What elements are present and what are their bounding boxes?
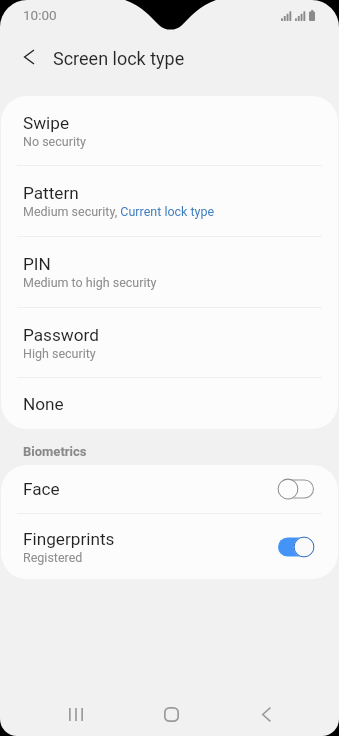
- button[interactable]: Fingerprints: [1, 514, 338, 579]
- staticText: Swipe: [23, 113, 70, 133]
- button[interactable]: None: [1, 378, 338, 429]
- staticText: None: [23, 394, 64, 414]
- button[interactable]: Face: [1, 465, 338, 513]
- staticText: No security: [23, 134, 86, 149]
- other: Fingerprints enabled: [278, 536, 314, 558]
- other: Face disabled: [278, 478, 314, 500]
- staticText: PIN: [23, 254, 51, 274]
- staticText: Pattern: [23, 183, 79, 203]
- button[interactable]: Pattern: [1, 166, 338, 236]
- staticText: Face: [23, 479, 60, 499]
- button[interactable]: PIN: [1, 237, 338, 307]
- staticText: Medium to high security: [23, 275, 157, 290]
- button[interactable]: Back: [238, 690, 294, 736]
- staticText: Registered: [23, 550, 83, 565]
- staticText: Medium security, Current lock type: [23, 204, 215, 219]
- staticText: Biometrics: [23, 444, 87, 459]
- staticText: 10:00: [23, 7, 57, 23]
- staticText: Fingerprints: [23, 529, 115, 549]
- button[interactable]: Home: [143, 690, 199, 736]
- staticText: Screen lock type: [53, 48, 185, 69]
- staticText: High security: [23, 346, 96, 361]
- button[interactable]: Navigate up: [6, 34, 52, 80]
- staticText: Password: [23, 325, 99, 345]
- button[interactable]: Recent apps: [48, 690, 104, 736]
- button[interactable]: Swipe: [1, 96, 338, 165]
- button[interactable]: Password: [1, 308, 338, 377]
